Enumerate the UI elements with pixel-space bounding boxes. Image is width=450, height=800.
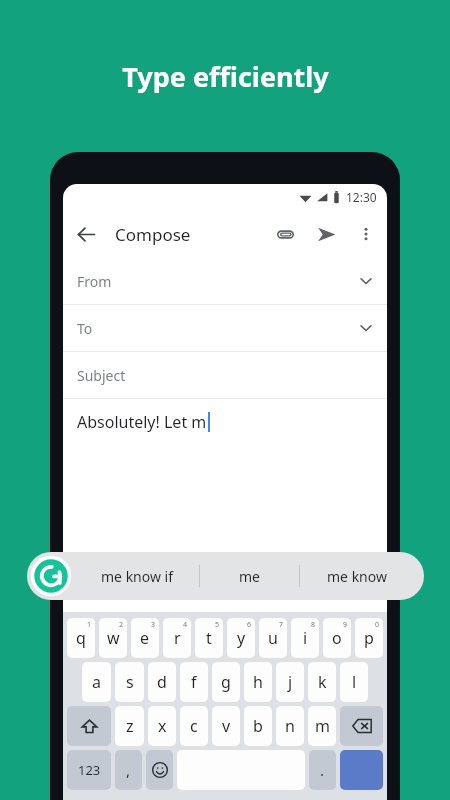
button[interactable]: j bbox=[276, 662, 304, 702]
staticText: Compose bbox=[115, 223, 191, 246]
button[interactable]: v bbox=[212, 706, 240, 746]
button[interactable]: From bbox=[63, 258, 387, 304]
staticText: r bbox=[174, 627, 181, 649]
button[interactable]: c bbox=[180, 706, 208, 746]
staticText: u bbox=[268, 627, 278, 649]
staticText: 9 bbox=[343, 620, 348, 630]
staticText: 3 bbox=[151, 620, 156, 630]
button[interactable]: x bbox=[148, 706, 176, 746]
staticText: v bbox=[222, 715, 231, 737]
button[interactable]: m bbox=[308, 706, 336, 746]
button[interactable]: Subject bbox=[63, 352, 387, 398]
staticText: w bbox=[107, 627, 120, 649]
button[interactable]: k bbox=[308, 662, 336, 702]
staticText: Subject bbox=[77, 366, 126, 385]
button[interactable]: Backspace bbox=[340, 706, 383, 746]
staticText: z bbox=[126, 715, 134, 737]
button[interactable]: 5 bbox=[195, 618, 223, 658]
button[interactable]: . bbox=[309, 750, 336, 790]
staticText: i bbox=[303, 627, 308, 649]
button[interactable]: n bbox=[276, 706, 304, 746]
button[interactable]: h bbox=[244, 662, 272, 702]
staticText: b bbox=[253, 715, 263, 737]
staticText: f bbox=[191, 671, 197, 693]
staticText: 5 bbox=[215, 620, 220, 630]
staticText: e bbox=[140, 627, 150, 649]
button[interactable]: Attach file bbox=[265, 214, 305, 254]
button[interactable]: f bbox=[180, 662, 208, 702]
button[interactable]: d bbox=[148, 662, 176, 702]
button[interactable]: Grammarly bbox=[27, 552, 75, 600]
button[interactable]: To bbox=[63, 305, 387, 351]
button[interactable]: 7 bbox=[259, 618, 287, 658]
button[interactable]: Emoji bbox=[146, 750, 173, 790]
button[interactable]: Enter bbox=[340, 750, 383, 790]
staticText: t bbox=[206, 627, 212, 649]
staticText: me bbox=[239, 567, 260, 586]
staticText: x bbox=[158, 715, 167, 737]
staticText: p bbox=[364, 627, 374, 649]
staticText: c bbox=[190, 715, 198, 737]
staticText: Absolutely! Let m bbox=[77, 411, 207, 433]
button[interactable]: z bbox=[115, 706, 144, 746]
staticText: q bbox=[76, 627, 86, 649]
staticText: d bbox=[157, 671, 167, 693]
staticText: , bbox=[126, 760, 131, 780]
button[interactable]: 0 bbox=[355, 618, 383, 658]
button[interactable]: , bbox=[115, 750, 142, 790]
button[interactable]: me know if bbox=[75, 552, 199, 600]
button[interactable]: 3 bbox=[131, 618, 159, 658]
staticText: me know bbox=[327, 567, 387, 586]
button[interactable]: b bbox=[244, 706, 272, 746]
staticText: . bbox=[320, 760, 325, 780]
button[interactable]: l bbox=[340, 662, 368, 702]
button[interactable]: Shift bbox=[67, 706, 111, 746]
button[interactable]: 4 bbox=[163, 618, 191, 658]
staticText: Type efficiently bbox=[122, 58, 329, 95]
button[interactable]: s bbox=[115, 662, 144, 702]
staticText: 8 bbox=[311, 620, 316, 630]
button[interactable]: 1 bbox=[67, 618, 95, 658]
button[interactable]: 8 bbox=[291, 618, 319, 658]
button[interactable]: Send bbox=[305, 213, 347, 255]
button[interactable]: me know bbox=[300, 552, 414, 600]
button[interactable]: 2 bbox=[99, 618, 127, 658]
button[interactable]: 123 bbox=[67, 750, 111, 790]
staticText: me know if bbox=[101, 567, 174, 586]
button[interactable]: g bbox=[212, 662, 240, 702]
staticText: y bbox=[237, 627, 246, 649]
staticText: 2 bbox=[119, 620, 124, 630]
staticText: m bbox=[315, 715, 330, 737]
staticText: a bbox=[92, 671, 101, 693]
other: Shift bbox=[81, 718, 98, 735]
staticText: 12:30 bbox=[346, 189, 377, 205]
staticText: 7 bbox=[279, 620, 284, 630]
staticText: g bbox=[221, 671, 231, 693]
other: Emoji bbox=[152, 762, 168, 778]
staticText: s bbox=[126, 671, 134, 693]
staticText: From bbox=[77, 272, 112, 291]
staticText: 123 bbox=[78, 761, 101, 779]
button[interactable]: 9 bbox=[323, 618, 351, 658]
staticText: 6 bbox=[247, 620, 252, 630]
button[interactable]: Back bbox=[63, 211, 109, 257]
button[interactable]: a bbox=[82, 662, 111, 702]
staticText: 4 bbox=[183, 620, 188, 630]
button[interactable]: 6 bbox=[227, 618, 255, 658]
other: Backspace bbox=[352, 716, 372, 736]
staticText: j bbox=[288, 671, 293, 693]
staticText: h bbox=[253, 671, 263, 693]
staticText: n bbox=[285, 715, 295, 737]
staticText: 1 bbox=[87, 620, 92, 630]
staticText: k bbox=[318, 671, 327, 693]
button[interactable]: More options bbox=[347, 215, 385, 253]
staticText: o bbox=[332, 627, 342, 649]
staticText: l bbox=[352, 671, 357, 693]
staticText: 0 bbox=[375, 620, 380, 630]
staticText: To bbox=[77, 319, 93, 338]
button[interactable]: me bbox=[200, 552, 299, 600]
